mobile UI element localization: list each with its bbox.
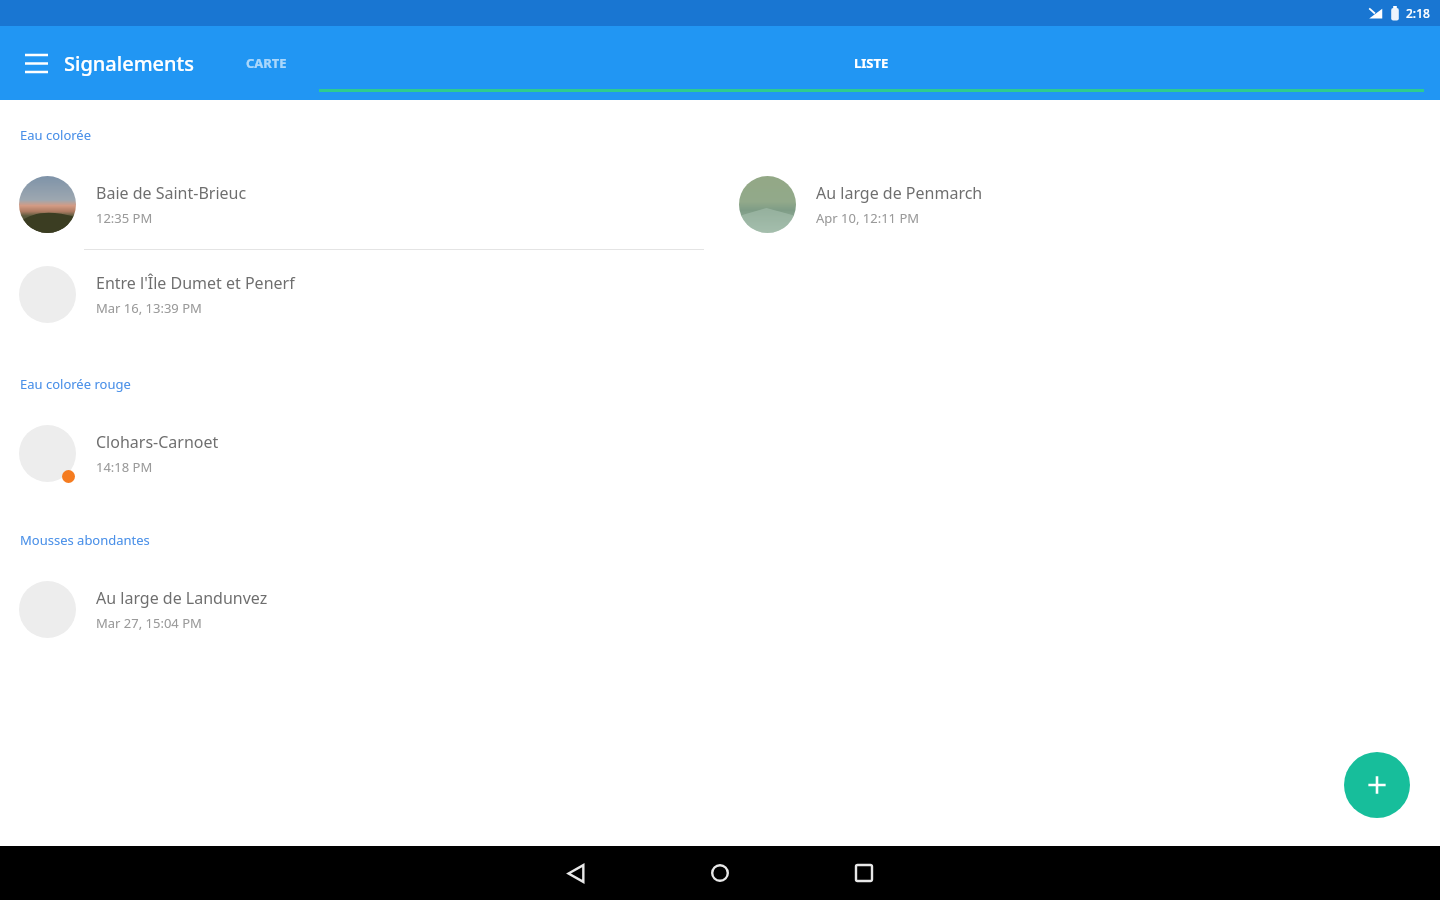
button[interactable]: Au large de Landunvez	[0, 577, 720, 642]
staticText: Clohars-Carnoet	[96, 431, 219, 453]
staticText: Au large de Landunvez	[96, 587, 268, 609]
button[interactable]: Recent apps	[836, 846, 892, 900]
staticText: Entre l'Île Dumet et Penerf	[96, 272, 295, 294]
staticText: Signalements	[64, 50, 194, 77]
staticText: LISTE	[854, 54, 889, 72]
button[interactable]: Add report	[1344, 752, 1410, 818]
staticText: Apr 10, 12:11 PM	[816, 209, 920, 227]
button[interactable]: Back	[548, 846, 604, 900]
staticText: 2:18	[1406, 5, 1430, 21]
staticText: 14:18 PM	[96, 458, 153, 476]
button[interactable]: Entre l'Île Dumet et Penerf	[0, 262, 720, 327]
button[interactable]: Open navigation menu	[14, 41, 58, 85]
button[interactable]: LISTE	[303, 26, 1440, 100]
staticText: Eau colorée rouge	[20, 375, 131, 393]
staticText: Mar 16, 13:39 PM	[96, 299, 202, 317]
staticText: 12:35 PM	[96, 209, 153, 227]
staticText: Mousses abondantes	[20, 531, 150, 549]
button[interactable]: CARTE	[230, 26, 303, 100]
button[interactable]: Clohars-Carnoet	[0, 421, 720, 486]
button[interactable]: Baie de Saint-Brieuc	[0, 172, 720, 237]
staticText: Baie de Saint-Brieuc	[96, 182, 247, 204]
staticText: Eau colorée	[20, 126, 92, 144]
button[interactable]: Home	[692, 846, 748, 900]
button[interactable]: Au large de Penmarch	[720, 172, 1440, 237]
staticText: Au large de Penmarch	[816, 182, 983, 204]
staticText: CARTE	[246, 54, 287, 72]
staticText: Mar 27, 15:04 PM	[96, 614, 202, 632]
